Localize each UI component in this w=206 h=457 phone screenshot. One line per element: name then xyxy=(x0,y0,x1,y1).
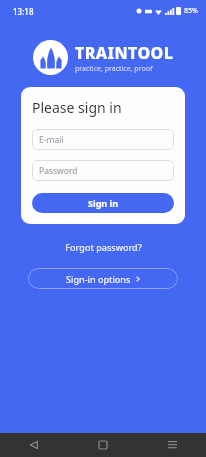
staticText: Forgot password? xyxy=(65,241,142,253)
button[interactable]: Forgot password? xyxy=(57,238,150,256)
staticText: 13:18 xyxy=(13,6,34,17)
button[interactable]: Home xyxy=(83,433,123,457)
button[interactable]: Sign-in options xyxy=(28,268,178,289)
staticText: Sign-in options xyxy=(66,273,131,285)
staticText: practice, practice, proof xyxy=(75,64,153,74)
button[interactable]: Sign in xyxy=(32,193,174,213)
button[interactable]: Password xyxy=(32,160,174,181)
button[interactable]: E-mail xyxy=(32,129,174,150)
staticText: Sign in xyxy=(88,197,119,209)
staticText: Password xyxy=(39,165,78,177)
button[interactable]: Recent apps xyxy=(152,433,192,457)
button[interactable]: Back xyxy=(14,433,54,457)
staticText: TRAINTOOL xyxy=(75,42,174,64)
staticText: E-mail xyxy=(39,134,64,146)
staticText: 85% xyxy=(184,6,198,16)
staticText: Please sign in xyxy=(32,98,122,117)
